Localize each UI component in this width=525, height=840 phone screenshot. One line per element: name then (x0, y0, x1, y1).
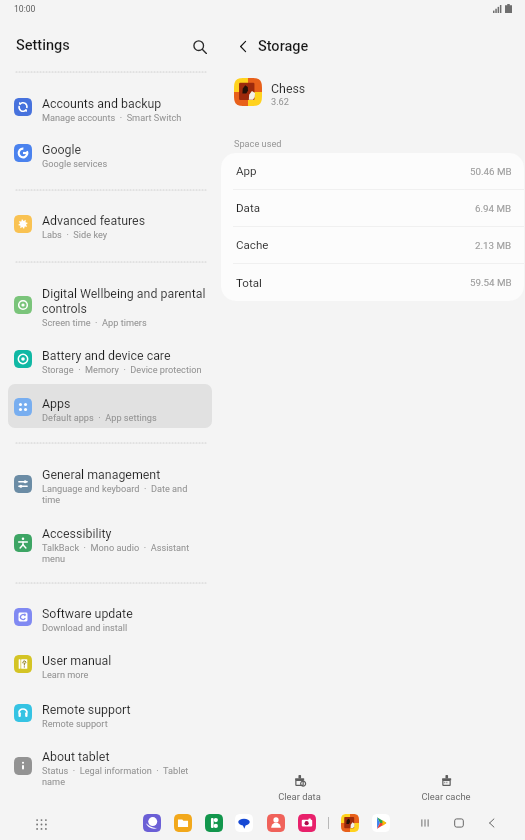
staticText: Accessibility (42, 526, 112, 541)
staticText: Manage accounts · Smart Switch (42, 112, 182, 123)
button[interactable]: Digital Wellbeing and parental controls (8, 274, 212, 333)
staticText: Total (236, 276, 262, 290)
button[interactable]: Accounts and backup (8, 84, 212, 128)
button[interactable]: Search (189, 36, 210, 57)
staticText: User manual (42, 653, 112, 668)
button[interactable]: Contacts (267, 814, 285, 832)
staticText: Labs · Side key (42, 229, 108, 240)
button[interactable]: Phone (205, 814, 223, 832)
staticText: Google (42, 142, 82, 157)
staticText: About tablet (42, 749, 110, 764)
staticText: 10:00 (14, 4, 36, 14)
staticText: Digital Wellbeing and parental controls (42, 286, 206, 316)
staticText: Advanced features (42, 213, 146, 228)
staticText: 2.13 MB (475, 240, 512, 251)
staticText: Learn more (42, 669, 89, 680)
button[interactable]: Battery and device care (8, 336, 212, 380)
button[interactable]: Data (221, 190, 524, 227)
button[interactable]: Total (221, 264, 524, 301)
button[interactable]: Messages (235, 814, 253, 832)
staticText: Storage (258, 38, 309, 55)
button[interactable]: Clear cache (406, 770, 486, 806)
button[interactable]: All apps (31, 814, 51, 834)
staticText: Screen time · App timers (42, 317, 147, 328)
staticText: Storage · Memory · Device protection (42, 364, 202, 375)
button[interactable]: Chess (341, 814, 359, 832)
staticText: TalkBack · Mono audio · Assistant menu (42, 542, 190, 564)
staticText: General management (42, 467, 161, 482)
button[interactable]: Chess (228, 74, 518, 112)
staticText: App (236, 164, 257, 178)
button[interactable]: Back (481, 812, 503, 834)
button[interactable]: Back (232, 35, 254, 57)
staticText: Status · Legal information · Tablet name (42, 765, 189, 787)
button[interactable]: Clear data (259, 770, 339, 806)
staticText: 3.62 (271, 96, 289, 107)
button[interactable]: About tablet (8, 737, 212, 792)
staticText: Default apps · App settings (42, 412, 157, 423)
staticText: Settings (16, 37, 70, 54)
button[interactable]: Software update (8, 594, 212, 638)
button[interactable]: Home (448, 812, 470, 834)
button[interactable]: Google (8, 130, 212, 174)
staticText: Accounts and backup (42, 96, 162, 111)
button[interactable]: Internet (143, 814, 161, 832)
staticText: Clear cache (421, 791, 471, 802)
staticText: Google services (42, 158, 108, 169)
staticText: 59.54 MB (470, 277, 512, 288)
staticText: Data (236, 201, 261, 215)
staticText: Space used (234, 138, 282, 149)
staticText: Remote support (42, 718, 108, 729)
staticText: Battery and device care (42, 348, 171, 363)
button[interactable]: Remote support (8, 690, 212, 734)
button[interactable]: My Files (174, 814, 192, 832)
button[interactable]: Advanced features (8, 201, 212, 245)
staticText: Apps (42, 396, 71, 411)
staticText: Software update (42, 606, 133, 621)
button[interactable]: App (221, 153, 524, 190)
staticText: Language and keyboard · Date and time (42, 483, 188, 505)
staticText: Download and install (42, 622, 128, 633)
button[interactable]: Cache (221, 227, 524, 264)
staticText: 50.46 MB (470, 166, 512, 177)
button[interactable]: Accessibility (8, 514, 212, 569)
button[interactable]: General management (8, 455, 212, 510)
staticText: Cache (236, 238, 269, 252)
staticText: Chess (271, 81, 306, 96)
staticText: 6.94 MB (475, 203, 512, 214)
staticText: Clear data (278, 791, 321, 802)
button[interactable]: Recents (414, 812, 436, 834)
button[interactable]: Play Store (372, 814, 390, 832)
staticText: Remote support (42, 702, 131, 717)
button[interactable]: Apps (8, 384, 212, 428)
button[interactable]: Camera (298, 814, 316, 832)
button[interactable]: User manual (8, 641, 212, 685)
